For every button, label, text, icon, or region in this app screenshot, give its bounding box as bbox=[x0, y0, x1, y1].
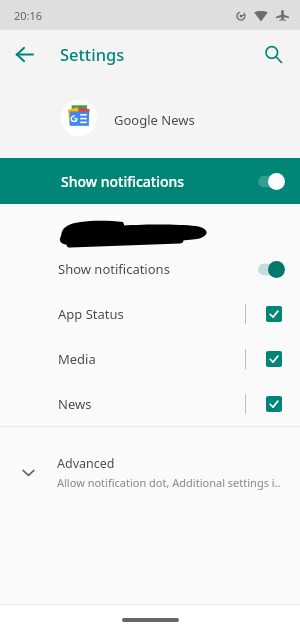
staticText: App Status bbox=[58, 305, 124, 323]
button[interactable]: Media bbox=[0, 337, 300, 381]
staticText: Advanced bbox=[57, 455, 115, 472]
staticText: Show notifications bbox=[58, 260, 170, 278]
button[interactable]: Back bbox=[5, 35, 43, 73]
button[interactable]: App Status bbox=[0, 292, 300, 336]
staticText: Allow notification dot, Additional setti… bbox=[57, 475, 281, 490]
button[interactable]: News bbox=[0, 382, 300, 426]
staticText: Media bbox=[58, 350, 96, 368]
staticText: Google News bbox=[114, 111, 195, 129]
staticText: Settings bbox=[60, 43, 125, 65]
staticText: News bbox=[58, 395, 92, 413]
button[interactable]: Search bbox=[254, 35, 292, 73]
staticText: 20:16 bbox=[14, 8, 43, 23]
button[interactable]: Show notifications bbox=[0, 158, 300, 204]
button[interactable]: Show notifications bbox=[0, 246, 300, 292]
staticText: Show notifications bbox=[61, 172, 185, 191]
button[interactable]: Advanced bbox=[0, 444, 300, 500]
